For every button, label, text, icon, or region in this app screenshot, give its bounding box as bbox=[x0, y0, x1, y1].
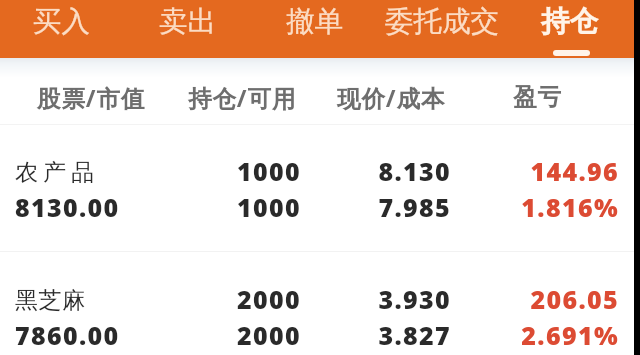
button[interactable]: 撤单 bbox=[254, 0, 374, 58]
staticText: 2.691% bbox=[469, 318, 619, 352]
staticText: 股票/市值 bbox=[37, 82, 146, 114]
staticText: 持仓/可用 bbox=[188, 82, 297, 114]
staticText: 盈亏 bbox=[513, 82, 562, 112]
button[interactable]: 买入 bbox=[1, 0, 121, 58]
button[interactable] bbox=[0, 252, 634, 355]
button[interactable]: 委托成交 bbox=[382, 0, 502, 58]
staticText: 8.130 bbox=[301, 154, 451, 188]
button[interactable] bbox=[0, 124, 634, 251]
staticText: 买入 bbox=[33, 4, 90, 40]
staticText: 黑芝麻 bbox=[15, 286, 86, 315]
staticText: 2000 bbox=[151, 318, 301, 352]
staticText: 1.816% bbox=[469, 190, 619, 224]
staticText: 委托成交 bbox=[385, 4, 499, 40]
staticText: 卖出 bbox=[159, 4, 216, 40]
staticText: 3.930 bbox=[301, 282, 451, 316]
staticText: 7860.00 bbox=[15, 318, 120, 352]
staticText: 8130.00 bbox=[15, 190, 120, 224]
staticText: 144.96 bbox=[469, 154, 619, 188]
staticText: 206.05 bbox=[469, 282, 619, 316]
button[interactable]: 持仓 bbox=[509, 0, 629, 58]
staticText: 7.985 bbox=[301, 190, 451, 224]
staticText: 持仓 bbox=[541, 4, 598, 40]
staticText: 现价/成本 bbox=[337, 82, 446, 114]
button[interactable]: 卖出 bbox=[127, 0, 247, 58]
staticText: 撤单 bbox=[286, 4, 343, 40]
staticText: 2000 bbox=[151, 282, 301, 316]
staticText: 1000 bbox=[151, 154, 301, 188]
staticText: 3.827 bbox=[301, 318, 451, 352]
staticText: 农产品 bbox=[15, 158, 100, 187]
staticText: 1000 bbox=[151, 190, 301, 224]
